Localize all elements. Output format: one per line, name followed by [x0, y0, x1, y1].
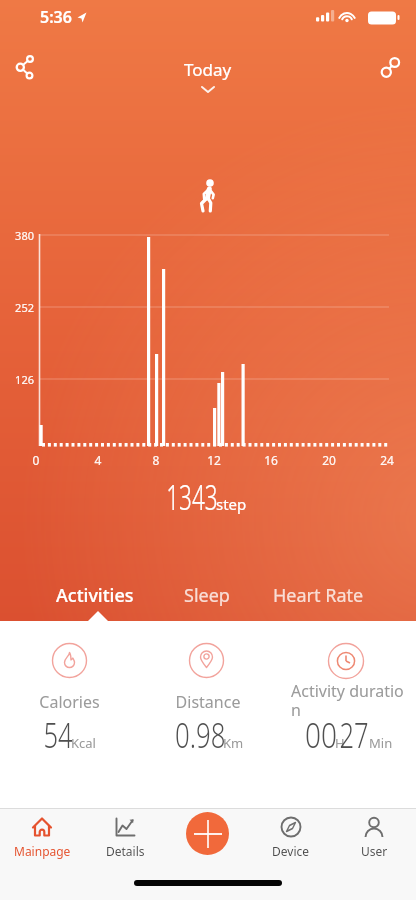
- button[interactable]: [186, 812, 229, 855]
- staticText: Distance: [139, 691, 277, 713]
- staticText: 252: [0, 300, 34, 315]
- button[interactable]: Heart Rate: [258, 583, 378, 608]
- staticText: H: [335, 734, 345, 752]
- staticText: Calories: [0, 691, 139, 713]
- staticText: Sleep: [184, 583, 230, 608]
- staticText: 54: [43, 711, 73, 759]
- staticText: Activities: [56, 583, 134, 608]
- button[interactable]: Details: [91, 815, 159, 859]
- staticText: 20: [315, 452, 343, 468]
- button[interactable]: Device: [257, 815, 325, 859]
- staticText: 5:36: [40, 6, 72, 28]
- staticText: Device: [272, 843, 310, 859]
- staticText: 126: [0, 372, 34, 387]
- staticText: Mainpage: [14, 843, 71, 859]
- staticText: User: [361, 843, 388, 859]
- staticText: Today: [184, 58, 232, 81]
- button[interactable]: Today: [184, 58, 232, 95]
- staticText: 380: [0, 228, 34, 243]
- staticText: 00: [305, 711, 337, 759]
- button[interactable]: User: [340, 815, 408, 859]
- staticText: 4: [84, 452, 112, 468]
- staticText: 24: [373, 452, 401, 468]
- button[interactable]: Activities: [35, 583, 155, 608]
- staticText: 12: [200, 452, 228, 468]
- staticText: Min: [369, 734, 393, 752]
- staticText: Heart Rate: [273, 583, 364, 608]
- staticText: 8: [142, 452, 170, 468]
- staticText: Kcal: [71, 734, 96, 752]
- staticText: 0.98: [175, 711, 226, 759]
- staticText: 16: [257, 452, 285, 468]
- staticText: 1343: [166, 473, 218, 521]
- staticText: 0: [22, 452, 50, 468]
- staticText: Details: [106, 843, 145, 859]
- button[interactable]: [8, 50, 42, 84]
- staticText: 27: [339, 711, 369, 759]
- button[interactable]: Mainpage: [8, 815, 76, 859]
- staticText: n: [291, 699, 301, 721]
- staticText: Activity duratio: [291, 680, 404, 702]
- staticText: step: [216, 494, 247, 514]
- button[interactable]: [374, 50, 408, 84]
- staticText: Km: [223, 734, 244, 752]
- button[interactable]: Sleep: [157, 583, 257, 608]
